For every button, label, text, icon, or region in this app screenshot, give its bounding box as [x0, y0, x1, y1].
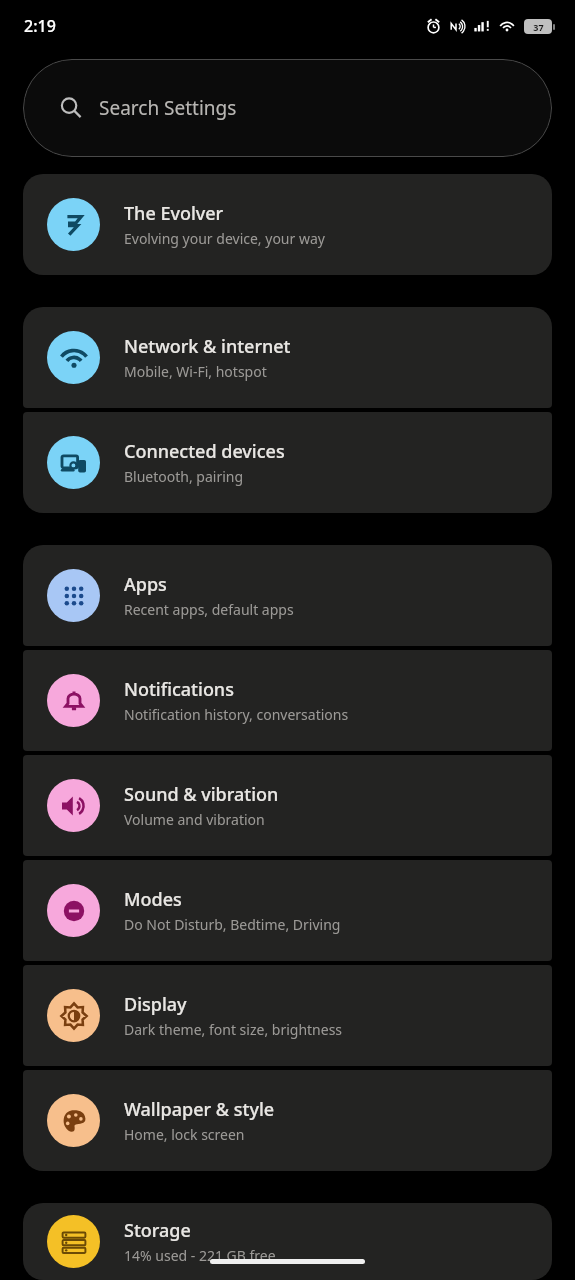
button[interactable]: Storage: [23, 1203, 552, 1280]
staticText: Volume and vibration: [124, 810, 265, 829]
button[interactable]: Sound & vibration: [23, 755, 552, 856]
button[interactable]: Apps: [23, 545, 552, 646]
staticText: Home, lock screen: [124, 1125, 245, 1144]
staticText: 37: [533, 21, 544, 33]
button[interactable]: Search Settings: [23, 59, 552, 157]
button[interactable]: Display: [23, 965, 552, 1066]
staticText: The Evolver: [124, 201, 224, 226]
button[interactable]: Connected devices: [23, 412, 552, 513]
staticText: 14% used - 221 GB free: [124, 1246, 276, 1265]
staticText: Storage: [124, 1218, 191, 1243]
staticText: Bluetooth, pairing: [124, 467, 244, 486]
staticText: Search Settings: [99, 95, 237, 121]
staticText: Connected devices: [124, 439, 285, 464]
button[interactable]: Wallpaper & style: [23, 1070, 552, 1171]
staticText: 2:19: [24, 15, 56, 37]
staticText: Notifications: [124, 677, 234, 702]
button[interactable]: Network & internet: [23, 307, 552, 408]
staticText: Evolving your device, your way: [124, 229, 325, 248]
staticText: Sound & vibration: [124, 782, 279, 807]
staticText: Do Not Disturb, Bedtime, Driving: [124, 915, 341, 934]
staticText: Recent apps, default apps: [124, 600, 294, 619]
staticText: Display: [124, 992, 187, 1017]
staticText: Apps: [124, 572, 167, 597]
staticText: Mobile, Wi-Fi, hotspot: [124, 362, 267, 381]
staticText: Modes: [124, 887, 182, 912]
button[interactable]: Notifications: [23, 650, 552, 751]
staticText: Wallpaper & style: [124, 1097, 275, 1122]
button[interactable]: Modes: [23, 860, 552, 961]
staticText: Network & internet: [124, 334, 291, 359]
button[interactable]: The Evolver: [23, 174, 552, 275]
staticText: Dark theme, font size, brightness: [124, 1020, 343, 1039]
staticText: Notification history, conversations: [124, 705, 349, 724]
